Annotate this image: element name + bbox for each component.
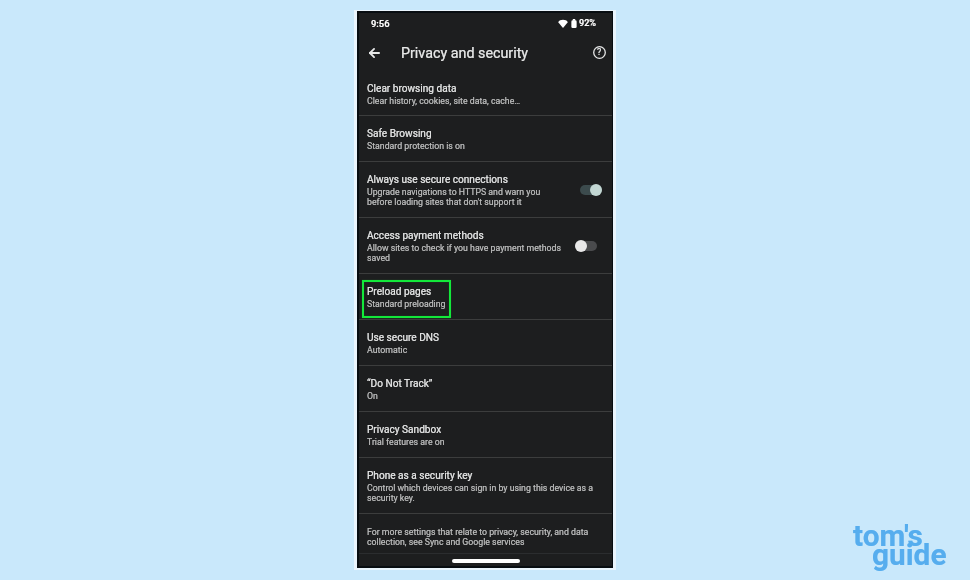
button[interactable]: Back bbox=[362, 41, 386, 65]
staticText: Trial features are on bbox=[367, 437, 445, 447]
button[interactable]: Phone as a security key bbox=[359, 458, 612, 514]
staticText: For more settings that relate to privacy… bbox=[367, 527, 595, 547]
staticText: guide bbox=[872, 537, 947, 572]
button[interactable]: Toggle Always use secure connections bbox=[580, 184, 602, 196]
button[interactable]: Privacy Sandbox bbox=[359, 412, 612, 458]
button[interactable]: Always use secure connections bbox=[359, 162, 612, 218]
staticText: Control which devices can sign in by usi… bbox=[367, 483, 598, 503]
staticText: Privacy and security bbox=[401, 45, 529, 62]
staticText: 92% bbox=[579, 18, 597, 29]
staticText: Clear browsing data bbox=[367, 83, 457, 95]
button[interactable]: Help bbox=[587, 40, 611, 64]
staticText: Automatic bbox=[367, 345, 408, 355]
staticText: 9:56 bbox=[371, 18, 390, 29]
staticText: Privacy Sandbox bbox=[367, 424, 442, 436]
staticText: Always use secure connections bbox=[367, 174, 508, 186]
staticText: Upgrade navigations to HTTPS and warn yo… bbox=[367, 187, 547, 207]
staticText: Clear history, cookies, site data, cache… bbox=[367, 96, 521, 106]
button[interactable]: “Do Not Track” bbox=[359, 366, 612, 412]
staticText: “Do Not Track” bbox=[367, 378, 433, 390]
staticText: Access payment methods bbox=[367, 230, 484, 242]
staticText: ? bbox=[597, 47, 602, 58]
button[interactable]: Safe Browsing bbox=[359, 116, 612, 162]
staticText: Standard preloading bbox=[367, 299, 446, 309]
staticText: tom's bbox=[853, 518, 923, 553]
staticText: Phone as a security key bbox=[367, 470, 473, 482]
button[interactable]: Use secure DNS bbox=[359, 320, 612, 366]
button[interactable]: Toggle Access payment methods bbox=[575, 240, 597, 252]
staticText: Preload pages bbox=[367, 286, 432, 298]
staticText: Allow sites to check if you have payment… bbox=[367, 243, 575, 263]
staticText: Standard protection is on bbox=[367, 141, 465, 151]
staticText: Use secure DNS bbox=[367, 332, 440, 344]
staticText: Safe Browsing bbox=[367, 128, 432, 140]
button[interactable]: Clear browsing data bbox=[359, 76, 612, 116]
button[interactable]: Access payment methods bbox=[359, 218, 612, 274]
button[interactable]: Preload pages bbox=[359, 274, 612, 320]
staticText: On bbox=[367, 391, 378, 401]
